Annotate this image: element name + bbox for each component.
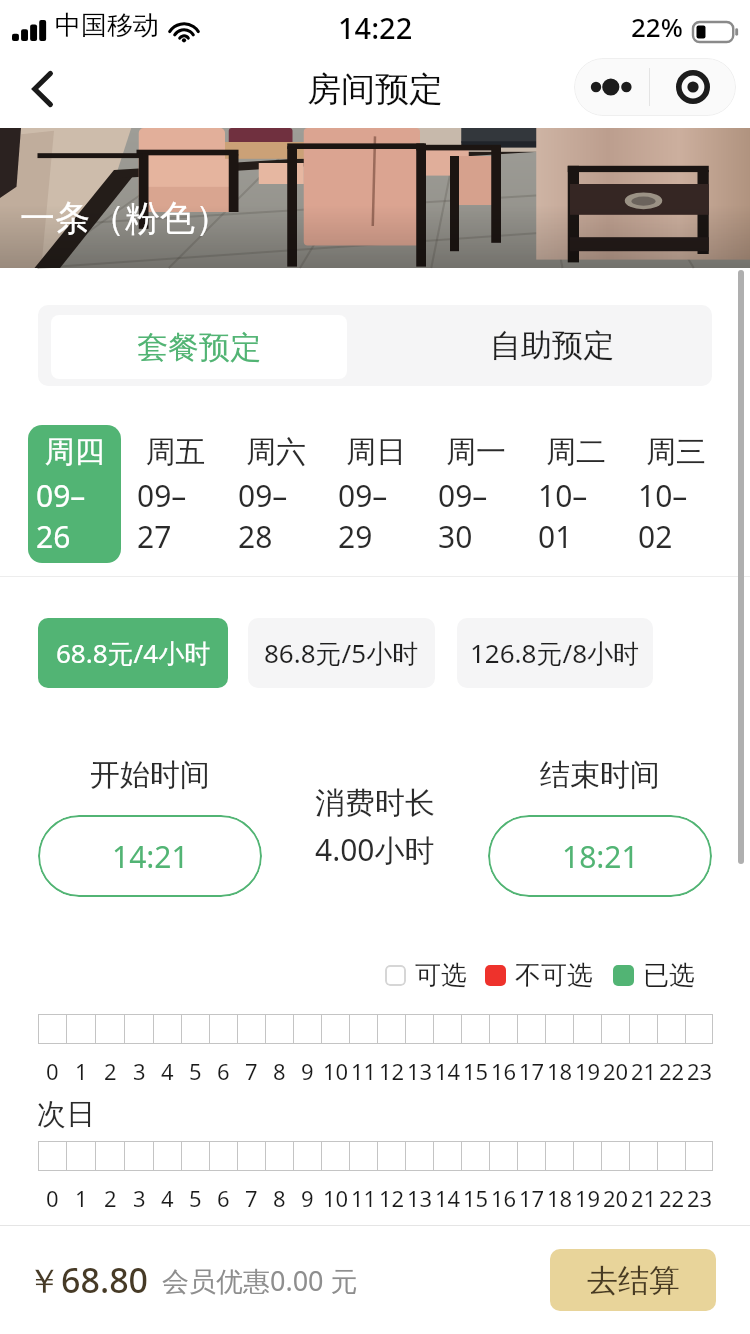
staticText: 13 [407, 1056, 433, 1086]
button[interactable] [322, 1141, 349, 1171]
button[interactable]: 返回 [14, 60, 72, 118]
staticText: 10 [323, 1056, 349, 1086]
button[interactable] [38, 1141, 66, 1171]
staticText: 15 [463, 1183, 489, 1213]
button[interactable] [210, 1141, 237, 1171]
button[interactable] [154, 1141, 181, 1171]
button[interactable] [574, 1141, 601, 1171]
button[interactable]: 68.8元/4小时 [38, 618, 228, 688]
button[interactable]: 周四 [28, 425, 121, 563]
staticText: 19 [575, 1056, 601, 1086]
button[interactable] [238, 1141, 265, 1171]
staticText: 09– [36, 475, 86, 516]
button[interactable] [574, 1014, 601, 1044]
button[interactable] [686, 1014, 713, 1044]
button[interactable] [518, 1141, 545, 1171]
button[interactable] [378, 1141, 405, 1171]
staticText: 28 [238, 516, 273, 557]
button[interactable]: 周一 [430, 425, 522, 563]
button[interactable] [658, 1141, 685, 1171]
button[interactable]: 可选 [385, 959, 467, 992]
button[interactable]: 去结算 [550, 1249, 716, 1311]
button[interactable]: 86.8元/5小时 [248, 618, 435, 688]
button[interactable] [96, 1141, 124, 1171]
button[interactable] [125, 1014, 153, 1044]
staticText: 8 [273, 1183, 286, 1213]
staticText: 9 [301, 1183, 314, 1213]
button[interactable]: 不可选 [485, 959, 593, 992]
button[interactable] [630, 1014, 657, 1044]
button[interactable] [154, 1014, 181, 1044]
button[interactable] [294, 1141, 321, 1171]
button[interactable] [96, 1014, 124, 1044]
button[interactable] [182, 1141, 209, 1171]
button[interactable]: 关闭 [650, 58, 736, 116]
button[interactable] [378, 1014, 405, 1044]
button[interactable] [490, 1014, 517, 1044]
staticText: 09– [238, 475, 288, 516]
button[interactable] [546, 1014, 573, 1044]
staticText: 6 [217, 1056, 230, 1086]
staticText: 11 [351, 1183, 377, 1213]
staticText: 自助预定 [490, 326, 614, 365]
button[interactable] [350, 1014, 377, 1044]
button[interactable]: 已选 [613, 959, 695, 992]
button[interactable] [462, 1014, 489, 1044]
button[interactable]: 自助预定 [391, 305, 712, 386]
staticText: 周六 [230, 433, 322, 471]
button[interactable] [238, 1014, 265, 1044]
button[interactable] [658, 1014, 685, 1044]
staticText: 不可选 [515, 959, 593, 992]
button[interactable] [434, 1141, 461, 1171]
staticText: 3 [133, 1056, 146, 1086]
staticText: 20 [603, 1183, 629, 1213]
staticText: 18:21 [562, 836, 639, 877]
button[interactable] [686, 1141, 713, 1171]
button[interactable] [67, 1141, 95, 1171]
staticText: 4 [161, 1183, 174, 1213]
staticText: 21 [631, 1056, 657, 1086]
staticText: 18 [547, 1183, 573, 1213]
button[interactable]: 14:21 [38, 815, 262, 897]
button[interactable]: 周六 [230, 425, 322, 563]
button[interactable]: 周日 [330, 425, 422, 563]
button[interactable] [38, 1014, 66, 1044]
staticText: 0 [46, 1056, 59, 1086]
staticText: 21 [631, 1183, 657, 1213]
button[interactable] [406, 1141, 433, 1171]
staticText: 3 [133, 1183, 146, 1213]
button[interactable] [266, 1014, 293, 1044]
button[interactable] [350, 1141, 377, 1171]
button[interactable]: 套餐预定 [51, 315, 347, 379]
button[interactable]: 更多 [574, 58, 649, 116]
button[interactable] [210, 1014, 237, 1044]
button[interactable] [630, 1141, 657, 1171]
button[interactable]: 周二 [530, 425, 622, 563]
button[interactable]: 126.8元/8小时 [457, 618, 653, 688]
staticText: 12 [379, 1056, 405, 1086]
button[interactable] [125, 1141, 153, 1171]
staticText: 17 [519, 1056, 545, 1086]
button[interactable] [462, 1141, 489, 1171]
button[interactable] [602, 1014, 629, 1044]
button[interactable] [406, 1014, 433, 1044]
staticText: 20 [603, 1056, 629, 1086]
button[interactable] [602, 1141, 629, 1171]
button[interactable] [434, 1014, 461, 1044]
button[interactable] [67, 1014, 95, 1044]
staticText: 86.8元/5小时 [264, 635, 419, 671]
staticText: 10 [323, 1183, 349, 1213]
button[interactable]: 周五 [129, 425, 222, 563]
staticText: 次日 [37, 1096, 95, 1133]
button[interactable]: 周三 [630, 425, 722, 563]
button[interactable] [322, 1014, 349, 1044]
staticText: 开始时间 [38, 756, 262, 794]
button[interactable] [490, 1141, 517, 1171]
button[interactable] [266, 1141, 293, 1171]
button[interactable] [518, 1014, 545, 1044]
staticText: 去结算 [587, 1261, 680, 1300]
button[interactable] [294, 1014, 321, 1044]
button[interactable] [546, 1141, 573, 1171]
button[interactable] [182, 1014, 209, 1044]
button[interactable]: 18:21 [488, 815, 712, 897]
